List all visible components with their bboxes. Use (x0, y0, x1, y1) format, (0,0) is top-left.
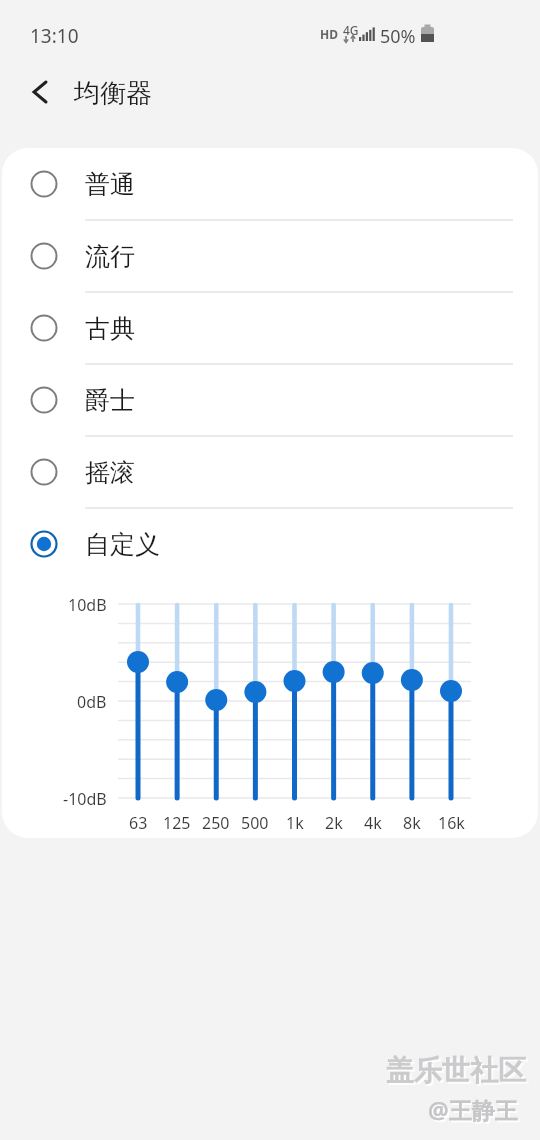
staticText: 古典 (85, 313, 135, 344)
staticText: 盖乐世社区 (386, 1053, 526, 1088)
staticText: 自定义 (85, 529, 160, 560)
staticText: 8k (403, 812, 421, 832)
staticText: 2k (325, 812, 343, 832)
staticText: HD (320, 26, 338, 42)
staticText: @王静王 (430, 1096, 520, 1127)
button[interactable]: 爵士 (2, 364, 538, 436)
staticText: 13:10 (30, 23, 79, 49)
staticText: 125 (163, 812, 191, 832)
staticText: 流行 (85, 241, 135, 272)
staticText: 4G (343, 22, 359, 38)
staticText: 盖乐世社区 (388, 1055, 528, 1090)
staticText: 1k (286, 812, 304, 832)
staticText: 16k (438, 812, 465, 832)
staticText: 爵士 (85, 385, 135, 416)
staticText: 0dB (77, 691, 107, 711)
staticText: 均衡器 (74, 77, 152, 110)
button[interactable] (20, 72, 64, 116)
staticText: 摇滚 (85, 457, 135, 488)
button[interactable]: 自定义 (2, 508, 538, 580)
button[interactable]: 流行 (2, 220, 538, 292)
button[interactable]: 普通 (2, 148, 538, 220)
staticText: -10dB (63, 788, 107, 808)
staticText: 10dB (68, 594, 107, 614)
button[interactable]: 摇滚 (2, 436, 538, 508)
staticText: @王静王 (428, 1094, 518, 1125)
staticText: 500 (241, 812, 269, 832)
staticText: 50% (380, 24, 416, 49)
staticText: 4k (364, 812, 382, 832)
staticText: 250 (202, 812, 230, 832)
staticText: 普通 (85, 169, 135, 200)
staticText: 63 (129, 812, 148, 832)
button[interactable]: 古典 (2, 292, 538, 364)
